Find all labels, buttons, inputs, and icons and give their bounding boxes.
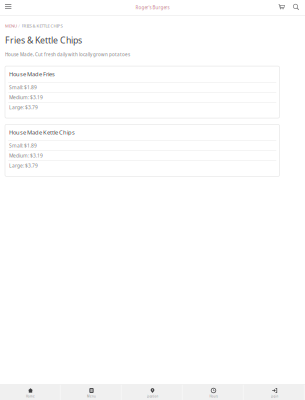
staticText: Login xyxy=(270,394,278,398)
button[interactable]: Hours xyxy=(183,385,244,400)
staticText: House Made, Cut fresh daily with locally… xyxy=(5,51,130,58)
button[interactable]: Search xyxy=(290,0,305,15)
button[interactable]: MENU xyxy=(5,23,17,29)
staticText: House Made Fries xyxy=(9,70,55,78)
staticText: Roger's Burgers xyxy=(135,4,169,10)
staticText: / xyxy=(18,23,20,29)
staticText: Fries & Kettle Chips xyxy=(5,34,82,46)
button[interactable]: Home xyxy=(0,385,61,400)
button[interactable]: Menu xyxy=(61,385,122,400)
button[interactable]: Cart xyxy=(278,0,290,15)
staticText: Menu xyxy=(87,394,96,398)
staticText: Medium: $3.19 xyxy=(9,152,43,159)
staticText: FRIES & KETTLE CHIPS xyxy=(22,23,63,29)
staticText: Small: $1.89 xyxy=(9,142,37,149)
button[interactable]: Menu xyxy=(0,0,15,15)
staticText: Small: $1.89 xyxy=(9,84,37,91)
staticText: Large: $3.79 xyxy=(9,104,38,111)
staticText: House Made Kettle Chips xyxy=(9,128,75,136)
button[interactable]: Location xyxy=(122,385,183,400)
staticText: Location xyxy=(146,394,158,398)
button[interactable]: Login xyxy=(244,385,305,400)
staticText: MENU xyxy=(5,23,17,29)
staticText: Large: $3.79 xyxy=(9,162,38,169)
staticText: Medium: $3.19 xyxy=(9,94,43,101)
staticText: Hours xyxy=(209,394,217,398)
staticText: Home xyxy=(26,394,35,398)
